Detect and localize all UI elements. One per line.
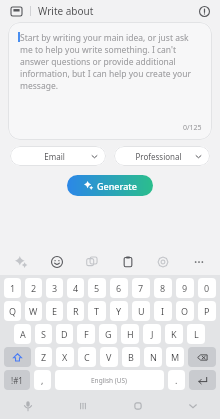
button[interactable]: I — [154, 301, 172, 321]
button[interactable]: R — [67, 301, 84, 321]
button[interactable]: L — [187, 324, 205, 344]
button[interactable]: Settings — [152, 251, 174, 273]
button[interactable]: 8 — [154, 278, 172, 298]
button[interactable]: Clipboard — [117, 251, 139, 273]
button[interactable]: 0 — [198, 278, 216, 298]
button[interactable]: Professional — [114, 146, 210, 166]
button[interactable]: D — [56, 324, 73, 344]
staticText: D — [61, 328, 68, 340]
staticText: X — [62, 351, 68, 363]
staticText: 4 — [73, 282, 79, 294]
button[interactable]: 5 — [88, 278, 106, 298]
button[interactable]: S — [35, 324, 52, 344]
button[interactable]: G — [99, 324, 117, 344]
staticText: C — [84, 351, 90, 363]
staticText: R — [73, 305, 79, 317]
staticText: T — [94, 305, 100, 317]
button[interactable]: O — [176, 301, 194, 321]
button[interactable]: Start by writing your main idea, or just… — [8, 22, 212, 140]
button[interactable]: N — [144, 347, 162, 367]
staticText: L — [194, 328, 199, 340]
button[interactable]: Shift — [4, 347, 31, 367]
staticText: Email — [18, 151, 91, 162]
staticText: !#1 — [11, 375, 23, 386]
staticText: S — [41, 328, 46, 340]
staticText: Start by writing your main idea, or just… — [20, 32, 202, 92]
button[interactable]: Home — [110, 393, 165, 419]
button[interactable]: Email — [10, 146, 106, 166]
button[interactable]: Keyboard — [8, 3, 24, 19]
button[interactable]: W — [25, 301, 42, 321]
button[interactable]: 4 — [67, 278, 84, 298]
button[interactable]: Voice input — [0, 393, 55, 419]
button[interactable]: 7 — [132, 278, 150, 298]
staticText: Professional — [122, 151, 195, 162]
staticText: 0/125 — [183, 123, 202, 133]
button[interactable]: K — [165, 324, 183, 344]
button[interactable]: A — [14, 324, 31, 344]
staticText: M — [171, 351, 180, 363]
staticText: 9 — [182, 282, 188, 294]
staticText: , — [41, 374, 44, 386]
button[interactable]: C — [78, 347, 96, 367]
staticText: V — [106, 351, 112, 363]
button[interactable]: Stickers — [81, 251, 103, 273]
button[interactable]: English (US) — [55, 370, 164, 390]
button[interactable]: Recents — [55, 393, 110, 419]
button[interactable]: !#1 — [4, 370, 30, 390]
staticText: I — [161, 305, 165, 317]
button[interactable]: . — [168, 370, 185, 390]
button[interactable]: Y — [110, 301, 128, 321]
staticText: O — [181, 305, 189, 317]
button[interactable]: 9 — [176, 278, 194, 298]
button[interactable]: 3 — [46, 278, 63, 298]
button[interactable]: Q — [4, 301, 21, 321]
staticText: Q — [9, 305, 17, 317]
staticText: P — [204, 305, 210, 317]
button[interactable]: Emoji — [46, 251, 68, 273]
staticText: W — [29, 305, 38, 317]
staticText: B — [128, 351, 134, 363]
button[interactable]: J — [143, 324, 161, 344]
button[interactable]: 6 — [110, 278, 128, 298]
staticText: Generate — [97, 180, 137, 192]
staticText: Z — [41, 351, 47, 363]
staticText: 2 — [31, 282, 37, 294]
staticText: English (US) — [91, 376, 128, 385]
staticText: Write about — [38, 4, 94, 18]
button[interactable]: B — [122, 347, 140, 367]
button[interactable]: X — [56, 347, 74, 367]
button[interactable]: M — [166, 347, 184, 367]
button[interactable]: , — [34, 370, 51, 390]
button[interactable]: 1 — [4, 278, 21, 298]
button[interactable]: H — [121, 324, 139, 344]
staticText: A — [20, 328, 26, 340]
button[interactable]: Z — [35, 347, 52, 367]
button[interactable]: Hide keyboard — [165, 393, 220, 419]
staticText: F — [84, 328, 89, 340]
button[interactable]: Info — [196, 3, 212, 19]
staticText: 5 — [94, 282, 100, 294]
staticText: K — [171, 328, 177, 340]
button[interactable]: Backspace — [188, 347, 216, 367]
staticText: N — [150, 351, 157, 363]
staticText: 0 — [204, 282, 210, 294]
button[interactable]: V — [100, 347, 118, 367]
staticText: J — [151, 328, 154, 340]
button[interactable]: AI writing — [10, 251, 32, 273]
button[interactable]: Generate — [67, 175, 153, 196]
button[interactable]: P — [198, 301, 216, 321]
button[interactable]: Enter — [189, 370, 216, 390]
button[interactable]: More options — [188, 251, 210, 273]
staticText: E — [52, 305, 58, 317]
staticText: G — [105, 328, 112, 340]
button[interactable]: U — [132, 301, 150, 321]
staticText: H — [127, 328, 134, 340]
button[interactable]: T — [88, 301, 106, 321]
button[interactable]: F — [77, 324, 95, 344]
staticText: . — [175, 374, 178, 386]
staticText: Y — [116, 305, 122, 317]
staticText: U — [138, 305, 145, 317]
button[interactable]: E — [46, 301, 63, 321]
button[interactable]: 2 — [25, 278, 42, 298]
